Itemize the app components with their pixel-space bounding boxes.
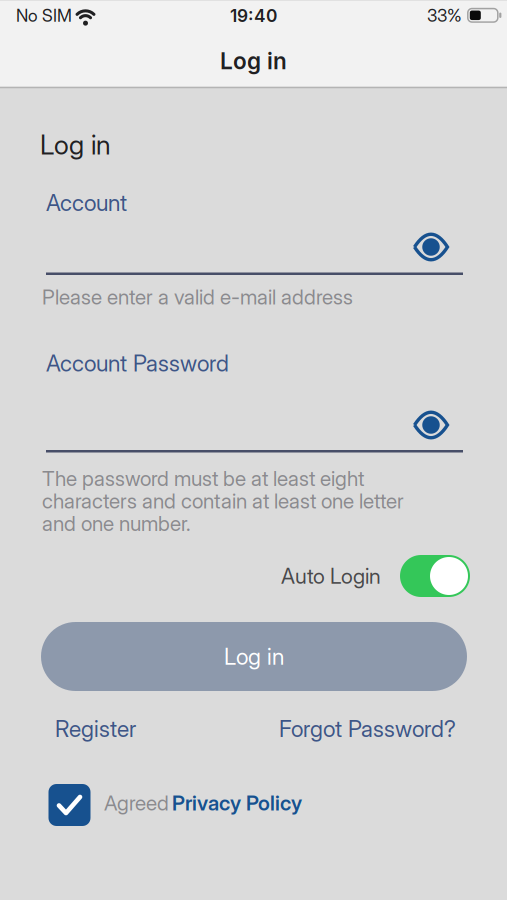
staticText: Privacy Policy (172, 790, 302, 815)
staticText: Register (55, 715, 136, 742)
button[interactable]: Privacy Policy (172, 790, 302, 815)
button[interactable]: Register (55, 715, 136, 742)
button[interactable]: Show password (413, 411, 449, 438)
button[interactable]: Log in (41, 622, 467, 691)
staticText: Agreed (104, 790, 169, 815)
staticText: Log in (224, 643, 284, 670)
staticText: Account (46, 189, 127, 216)
button[interactable]: Auto Login (400, 555, 470, 597)
button[interactable]: Forgot Password? (279, 715, 456, 742)
staticText: 19:40 (230, 5, 277, 26)
staticText: Log in (40, 129, 111, 160)
staticText: 33% (427, 5, 462, 26)
staticText: Account Password (46, 350, 229, 377)
staticText: Log in (220, 47, 287, 75)
button[interactable]: Show password (413, 233, 449, 260)
button[interactable]: Agreed (48, 784, 90, 826)
staticText: and one number. (42, 511, 191, 536)
staticText: characters and contain at least one lett… (42, 488, 404, 513)
staticText: Auto Login (281, 563, 381, 589)
staticText: Forgot Password? (279, 715, 456, 742)
staticText: The password must be at least eight (42, 466, 364, 491)
staticText: Please enter a valid e-mail address (42, 284, 353, 309)
staticText: No SIM (16, 5, 72, 26)
